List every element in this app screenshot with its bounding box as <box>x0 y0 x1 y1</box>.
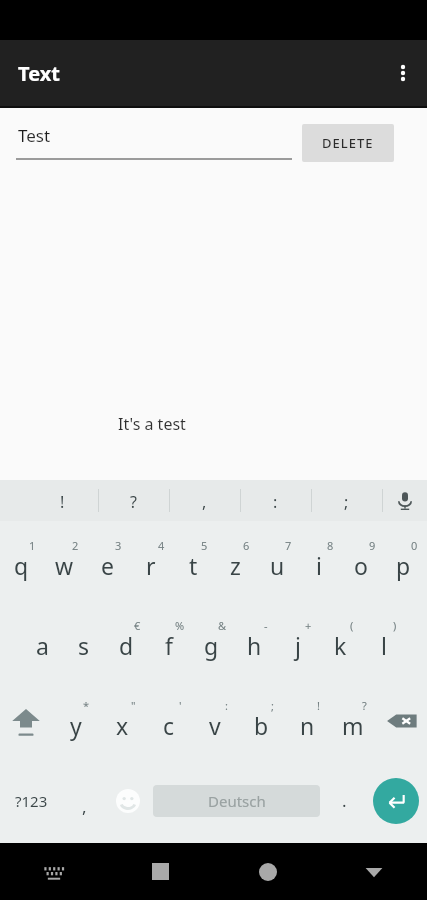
staticText: j <box>295 630 301 661</box>
staticText: z <box>230 550 241 581</box>
button[interactable]: k <box>319 601 362 681</box>
button[interactable]: : <box>240 480 311 521</box>
button[interactable]: Deutsch <box>153 785 320 817</box>
staticText: g <box>204 630 219 661</box>
button[interactable]: e <box>86 521 129 601</box>
button[interactable]: ! <box>27 480 98 521</box>
staticText: ! <box>60 491 65 513</box>
button[interactable]: Shift <box>0 681 52 761</box>
staticText: " <box>131 698 136 713</box>
staticText: x <box>116 710 129 741</box>
staticText: : <box>273 491 278 513</box>
button[interactable]: ; <box>311 480 382 521</box>
button[interactable]: Backspace <box>376 681 427 761</box>
button[interactable]: z <box>214 521 256 601</box>
staticText: Test <box>18 124 51 147</box>
button[interactable]: n <box>284 681 330 761</box>
button[interactable]: t <box>172 521 214 601</box>
button[interactable]: u <box>256 521 298 601</box>
staticText: ; <box>344 491 349 513</box>
button[interactable]: a <box>21 601 63 681</box>
staticText: ) <box>393 618 397 633</box>
staticText: 8 <box>327 538 334 553</box>
button[interactable]: s <box>63 601 105 681</box>
button[interactable]: j <box>276 601 319 681</box>
staticText: s <box>78 630 90 661</box>
staticText: & <box>218 618 227 633</box>
button[interactable]: l <box>362 601 405 681</box>
button[interactable]: f <box>147 601 190 681</box>
staticText: DELETE <box>322 134 374 152</box>
button[interactable]: Emoji <box>106 761 150 841</box>
button[interactable]: d <box>105 601 147 681</box>
button[interactable]: c <box>146 681 192 761</box>
staticText: d <box>119 630 134 661</box>
staticText: u <box>270 550 285 581</box>
button[interactable]: More options <box>379 49 427 97</box>
button[interactable]: Test <box>16 124 292 160</box>
staticText: h <box>247 630 262 661</box>
button[interactable]: q <box>0 521 43 601</box>
staticText: ? <box>362 698 367 713</box>
staticText: q <box>14 550 29 581</box>
staticText: - <box>264 618 268 633</box>
staticText: 3 <box>115 538 122 553</box>
staticText: ! <box>317 698 320 713</box>
staticText: y <box>70 710 82 741</box>
button[interactable]: x <box>99 681 146 761</box>
staticText: w <box>55 550 74 581</box>
staticText: Deutsch <box>208 791 266 811</box>
staticText: + <box>305 618 312 633</box>
button[interactable]: g <box>190 601 233 681</box>
button[interactable]: Home <box>214 843 321 900</box>
staticText: v <box>209 710 221 741</box>
staticText: e <box>101 550 114 581</box>
staticText: k <box>334 630 347 661</box>
staticText: * <box>83 698 90 713</box>
button[interactable]: , <box>62 761 106 841</box>
button[interactable]: w <box>43 521 86 601</box>
button[interactable]: h <box>233 601 276 681</box>
staticText: 7 <box>285 538 292 553</box>
button[interactable]: ? <box>98 480 169 521</box>
button[interactable]: o <box>340 521 382 601</box>
staticText: , <box>202 491 207 513</box>
staticText: b <box>254 710 269 741</box>
button[interactable]: y <box>52 681 99 761</box>
button[interactable]: Hide keyboard <box>321 843 427 900</box>
staticText: f <box>165 630 173 661</box>
staticText: % <box>175 618 185 633</box>
staticText: , <box>82 795 87 818</box>
staticText: o <box>354 550 368 581</box>
button[interactable]: Enter <box>365 761 427 841</box>
staticText: ?123 <box>15 791 48 811</box>
button[interactable]: ?123 <box>0 761 62 841</box>
staticText: t <box>189 550 198 581</box>
staticText: ? <box>130 491 137 513</box>
staticText: m <box>342 710 364 741</box>
button[interactable]: v <box>192 681 238 761</box>
button[interactable]: . <box>323 761 365 841</box>
staticText: l <box>381 630 387 661</box>
button[interactable]: Voice input <box>382 480 427 521</box>
button[interactable]: i <box>298 521 340 601</box>
staticText: 2 <box>72 538 79 553</box>
staticText: 4 <box>158 538 165 553</box>
staticText: ( <box>350 618 354 633</box>
button[interactable]: r <box>129 521 172 601</box>
staticText: a <box>36 630 49 661</box>
button[interactable]: , <box>169 480 240 521</box>
button[interactable]: m <box>330 681 376 761</box>
staticText: € <box>134 618 141 633</box>
button[interactable]: Switch keyboard <box>0 843 107 900</box>
staticText: p <box>396 550 411 581</box>
button[interactable]: b <box>238 681 284 761</box>
staticText: i <box>316 550 322 581</box>
staticText: ' <box>179 698 182 713</box>
staticText: 5 <box>201 538 208 553</box>
button[interactable]: DELETE <box>302 124 394 162</box>
staticText: r <box>146 550 156 581</box>
button[interactable]: p <box>382 521 424 601</box>
staticText: Text <box>18 60 60 87</box>
button[interactable]: Recent apps <box>107 843 214 900</box>
